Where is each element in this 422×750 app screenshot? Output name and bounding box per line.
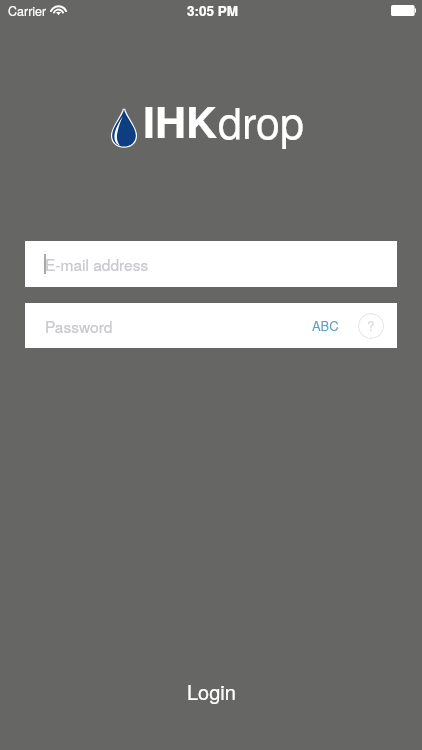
staticText: Carrier — [8, 2, 47, 20]
button[interactable]: Help — [358, 313, 384, 339]
staticText: Password — [45, 315, 113, 337]
button[interactable]: Password — [25, 303, 397, 348]
button[interactable]: E-mail address — [25, 241, 397, 287]
staticText: E-mail address — [45, 253, 149, 275]
staticText: drop — [218, 90, 304, 152]
button[interactable]: ABC — [310, 312, 341, 339]
staticText: ABC — [312, 316, 339, 335]
staticText: ? — [367, 316, 375, 335]
staticText: 3:05 PM — [187, 1, 239, 20]
staticText: Login — [187, 677, 236, 706]
button[interactable]: Login — [151, 668, 271, 712]
staticText: IHK — [143, 90, 218, 152]
